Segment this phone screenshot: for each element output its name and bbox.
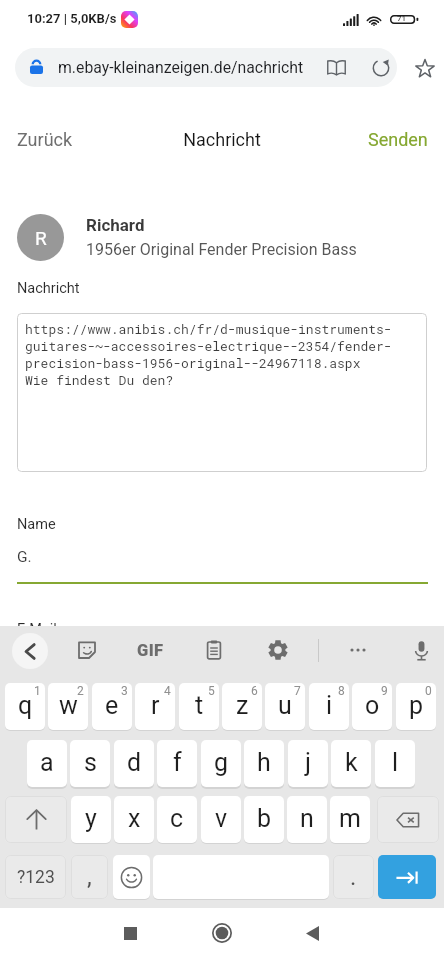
button[interactable]: t: [179, 683, 219, 730]
staticText: v: [215, 804, 228, 833]
staticText: https://www.anibis.ch/fr/d-musique-instr…: [25, 320, 392, 337]
staticText: 0: [425, 684, 432, 698]
button[interactable]: G.: [17, 548, 428, 584]
staticText: 6: [251, 684, 258, 698]
button[interactable]: w: [48, 683, 88, 730]
staticText: u: [278, 691, 292, 720]
button[interactable]: y: [71, 796, 111, 843]
staticText: z: [236, 691, 249, 720]
button[interactable]: v: [201, 796, 241, 843]
button[interactable]: GIF: [133, 636, 167, 664]
button[interactable]: Bookmark: [410, 53, 439, 82]
button[interactable]: https://www.anibis.ch/fr/d-musique-instr…: [17, 313, 427, 472]
button[interactable]: x: [114, 796, 154, 843]
button[interactable]: k: [331, 740, 371, 787]
staticText: 9: [381, 684, 388, 698]
staticText: Senden: [368, 129, 428, 150]
staticText: R: [35, 227, 47, 249]
button[interactable]: n: [287, 796, 327, 843]
staticText: GIF: [137, 641, 164, 660]
staticText: x: [128, 804, 141, 833]
button[interactable]: f: [157, 740, 197, 787]
button[interactable]: c: [157, 796, 197, 843]
button[interactable]: Reading mode: [322, 53, 351, 82]
button[interactable]: Clipboard: [197, 633, 231, 667]
button[interactable]: More options: [341, 633, 375, 667]
button[interactable]: a: [27, 740, 67, 787]
button[interactable]: Secure connection: [15, 48, 397, 87]
button[interactable]: j: [288, 740, 328, 787]
staticText: o: [365, 691, 380, 720]
staticText: Zurück: [17, 129, 73, 150]
button[interactable]: d: [114, 740, 154, 787]
staticText: m: [339, 804, 361, 833]
button[interactable]: Emoji: [113, 855, 150, 899]
button[interactable]: Back: [292, 913, 332, 953]
button[interactable]: b: [244, 796, 284, 843]
button[interactable]: q: [5, 683, 45, 730]
button[interactable]: ?123: [5, 855, 66, 899]
staticText: i: [326, 691, 333, 720]
staticText: Nachricht: [0, 129, 444, 150]
staticText: guitares-~-accessoires-electrique--2354/…: [25, 337, 392, 354]
staticText: a: [40, 748, 54, 777]
button[interactable]: Zurück: [17, 129, 73, 150]
staticText: 71: [397, 14, 407, 23]
staticText: 1956er Original Fender Precision Bass: [86, 240, 357, 259]
staticText: 3: [121, 684, 128, 698]
staticText: p: [409, 691, 424, 720]
staticText: 4: [164, 684, 171, 698]
button[interactable]: i: [309, 683, 349, 730]
button[interactable]: z: [222, 683, 262, 730]
staticText: q: [18, 691, 33, 720]
button[interactable]: Shift: [5, 796, 67, 843]
staticText: 7: [294, 684, 301, 698]
button[interactable]: Enter: [378, 855, 436, 899]
button[interactable]: l: [375, 740, 415, 787]
staticText: h: [257, 748, 271, 777]
staticText: c: [170, 804, 184, 833]
staticText: G.: [17, 548, 32, 566]
button[interactable]: s: [70, 740, 110, 787]
staticText: e: [105, 691, 119, 720]
staticText: k: [345, 748, 358, 777]
button[interactable]: Voice input: [404, 633, 438, 667]
staticText: 10:27 | 5,0KB/s: [27, 11, 117, 26]
staticText: E-Mail: [17, 621, 57, 638]
button[interactable]: Home: [202, 913, 242, 953]
button[interactable]: Reload: [366, 53, 395, 82]
button[interactable]: u: [265, 683, 305, 730]
staticText: s: [84, 748, 97, 777]
button[interactable]: Stickers: [70, 633, 104, 667]
button[interactable]: m: [330, 796, 370, 843]
button[interactable]: o: [352, 683, 392, 730]
button[interactable]: Recent apps: [110, 913, 150, 953]
staticText: Nachricht: [17, 280, 80, 297]
button[interactable]: r: [135, 683, 175, 730]
button[interactable]: e: [92, 683, 132, 730]
button[interactable]: R: [17, 214, 335, 261]
button[interactable]: ,: [71, 855, 108, 899]
button[interactable]: p: [396, 683, 436, 730]
button[interactable]: Settings: [261, 633, 295, 667]
button[interactable]: .: [333, 855, 374, 899]
staticText: w: [59, 691, 78, 720]
staticText: .: [350, 863, 357, 891]
staticText: Richard: [86, 215, 145, 235]
other: Secure connection: [30, 59, 43, 75]
staticText: j: [305, 748, 311, 777]
staticText: ,: [87, 863, 92, 891]
staticText: d: [127, 748, 142, 777]
staticText: n: [300, 804, 314, 833]
button[interactable]: g: [201, 740, 241, 787]
staticText: b: [257, 804, 272, 833]
staticText: Name: [17, 516, 56, 533]
button[interactable]: Senden: [368, 129, 428, 150]
button[interactable]: h: [244, 740, 284, 787]
staticText: Wie findest Du den?: [25, 371, 174, 388]
button[interactable]: Back: [12, 633, 48, 669]
button[interactable]: Backspace: [377, 796, 439, 843]
staticText: 5: [208, 684, 215, 698]
staticText: precision-bass-1956-original--24967118.a…: [25, 354, 361, 371]
